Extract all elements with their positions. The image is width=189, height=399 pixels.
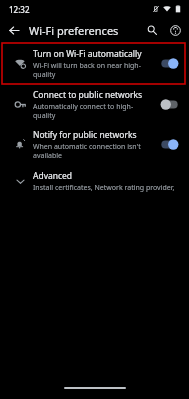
button[interactable]: Turn on Wi-Fi automatically (0, 42, 189, 84)
staticText: Turn on Wi-Fi automatically (33, 48, 142, 60)
staticText: Install certificates, Network rating pro… (33, 183, 181, 193)
staticText: Notify for public networks (33, 129, 137, 141)
button[interactable]: Connect to public networks (0, 84, 189, 124)
button[interactable]: Advanced (0, 164, 189, 198)
staticText: Wi-Fi will turn back on near high-qualit… (33, 61, 153, 79)
staticText: When automatic connection isn't availabl… (33, 142, 141, 160)
staticText: Advanced (33, 170, 73, 182)
button[interactable]: Notify for public networks (0, 124, 189, 164)
button[interactable]: Back (4, 20, 24, 40)
button[interactable]: Search (142, 20, 162, 40)
staticText: Automatically connect to high-quality pu… (33, 102, 153, 120)
button[interactable]: Connect to public networks toggle (157, 94, 181, 114)
button[interactable]: Notify for public networks toggle (157, 134, 181, 154)
staticText: Connect to public networks (33, 89, 143, 101)
staticText: 12:32 (9, 4, 30, 15)
staticText: Wi-Fi preferences (29, 23, 119, 38)
button[interactable]: Turn on Wi-Fi automatically toggle (157, 53, 181, 73)
button[interactable]: Help (165, 20, 185, 40)
